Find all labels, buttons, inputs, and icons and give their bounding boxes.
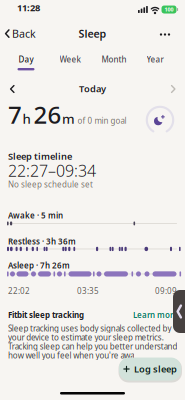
button[interactable]: Week [50,54,90,65]
staticText: Month [101,54,126,65]
staticText: Tracking sleep can help you better under… [8,341,177,352]
staticText: m [62,110,75,127]
staticText: 22:27–09:34 [8,160,96,181]
button[interactable] [158,28,172,40]
staticText: Week [59,54,80,65]
button[interactable] [145,105,174,134]
button[interactable]: Month [94,54,134,65]
button[interactable]: Back [5,26,36,41]
staticText: Fitbit sleep tracking [8,309,84,320]
staticText: h [22,110,30,127]
staticText: Year [146,54,163,65]
staticText: Learn more [133,309,178,320]
staticText: of 0 min goal [77,115,126,126]
staticText: Awake · 5 min [8,210,63,221]
staticText: Log sleep [134,363,177,375]
button[interactable] [173,290,185,333]
staticText: Sleep [78,26,106,41]
button[interactable]: Year [135,54,175,65]
staticText: 09:09 [155,285,177,296]
staticText: 22:02 [8,285,30,296]
staticText: No sleep schedule set [8,179,93,190]
staticText: 7 [8,98,22,130]
button[interactable]: Day [6,54,46,65]
staticText: Today [79,82,106,95]
staticText: Sleep tracking uses body signals collect… [8,323,171,334]
button[interactable]: Log sleep [119,357,181,380]
staticText: 26 [33,98,61,130]
staticText: Back [12,26,36,41]
staticText: Sleep timeline [8,150,72,162]
staticText: Asleep · 7h 26m [8,260,70,271]
button[interactable]: Learn more [0,308,178,319]
staticText: Day [18,54,33,65]
staticText: 100 [164,6,173,13]
staticText: Restless · 3h 36m [8,236,76,247]
staticText: your device to estimate your sleep metri… [8,332,164,343]
staticText: 03:35 [77,285,99,296]
staticText: 11:28 [17,1,40,14]
staticText: how well you feel when you're awa [8,350,134,361]
